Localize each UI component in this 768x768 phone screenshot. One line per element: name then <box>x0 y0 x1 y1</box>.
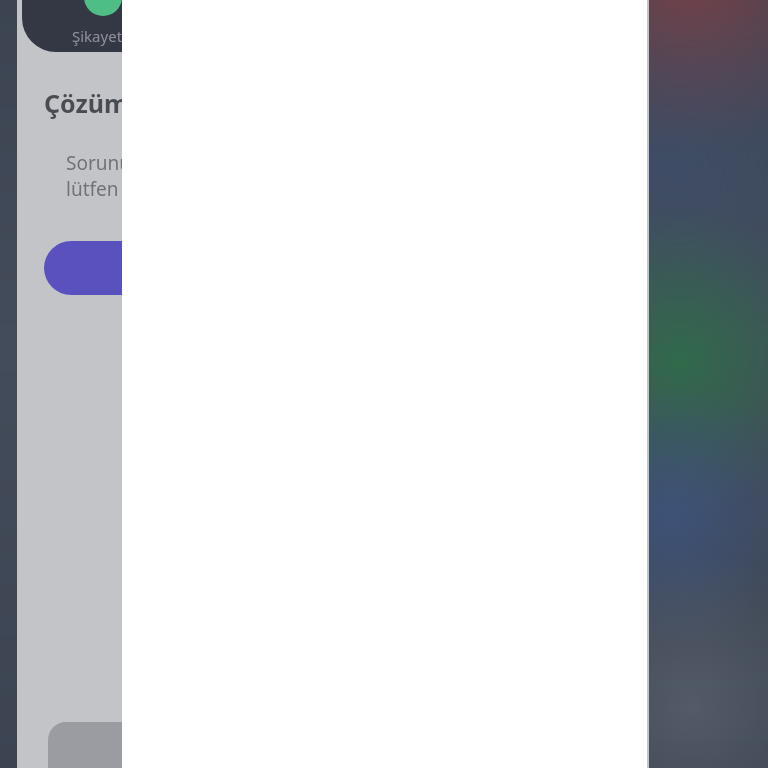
staticText: Sorununuz ekibimize ulaştı, lütfen kısa … <box>66 150 312 201</box>
button[interactable]: Geri dön <box>48 722 348 768</box>
staticText: Çözüm süreci başladı <box>44 86 306 120</box>
button[interactable]: Durumu görüntüle <box>44 241 374 295</box>
button[interactable]: Şikayetiniz iletildi <box>22 0 582 52</box>
staticText: Şikayetiniz iletildi <box>72 26 193 46</box>
